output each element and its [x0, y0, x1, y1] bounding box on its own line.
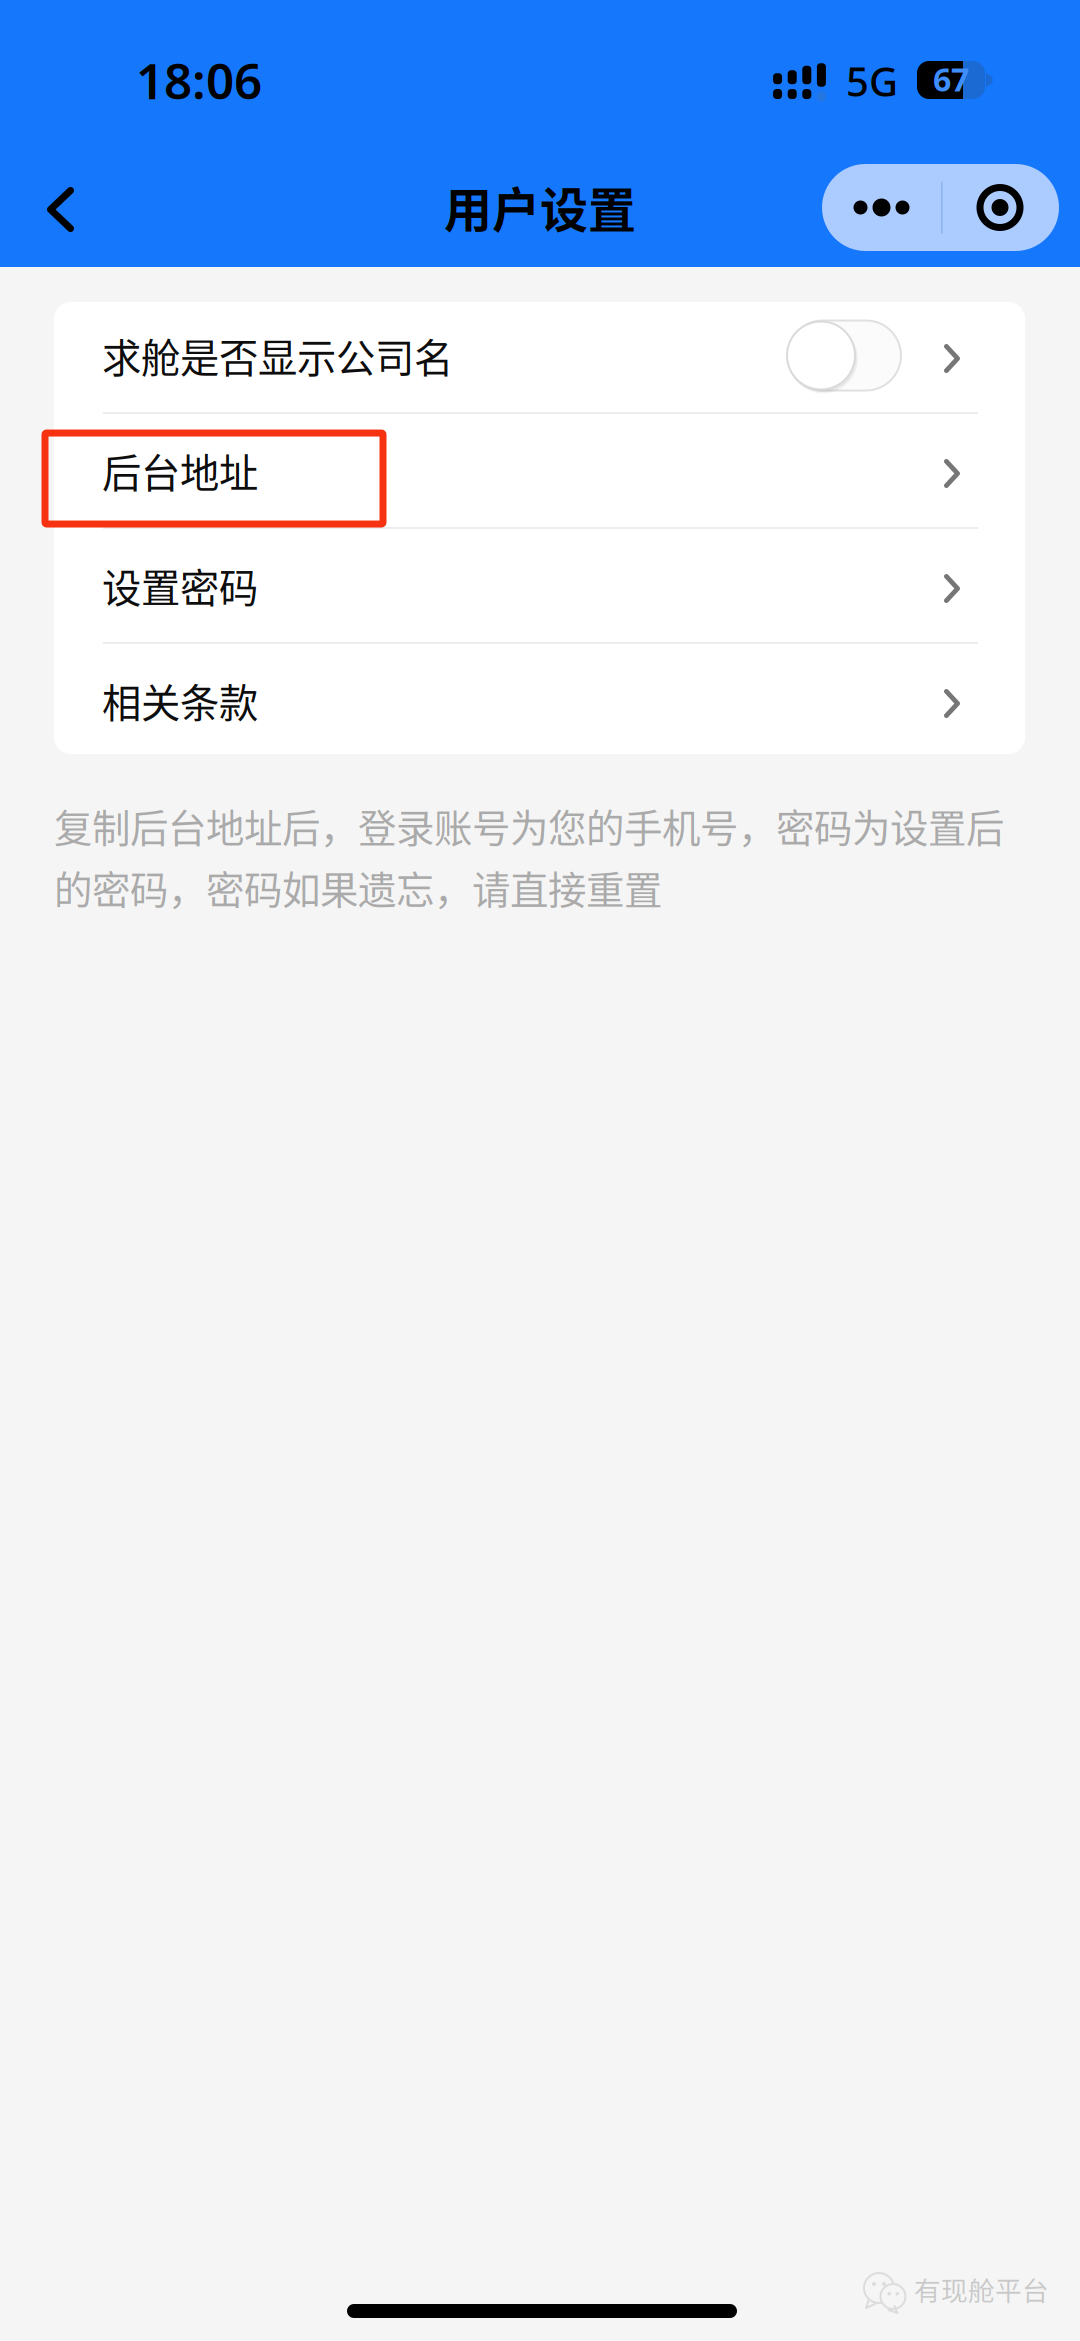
button[interactable]: More options	[822, 164, 941, 251]
button[interactable]: 求舱是否显示公司名	[54, 299, 1025, 412]
staticText: 有现舱平台	[914, 2270, 1049, 2308]
staticText: 设置密码	[102, 557, 258, 614]
staticText: 相关条款	[102, 672, 258, 729]
staticText: 67	[933, 58, 969, 100]
staticText: 求舱是否显示公司名	[102, 327, 453, 384]
button[interactable]: Close mini program	[941, 164, 1059, 251]
button[interactable]: 后台地址	[54, 414, 1025, 527]
staticText: 后台地址	[102, 442, 258, 499]
button[interactable]: Back	[13, 159, 108, 260]
button[interactable]: 设置密码	[54, 529, 1025, 642]
staticText: 5G	[846, 54, 898, 107]
button[interactable]: 相关条款	[54, 644, 1025, 757]
staticText: 用户设置	[444, 172, 636, 241]
staticText: 复制后台地址后，登录账号为您的手机号，密码为设置后的密码，密码如果遗忘，请直接重…	[54, 798, 1004, 915]
staticText: 18:06	[136, 47, 262, 113]
